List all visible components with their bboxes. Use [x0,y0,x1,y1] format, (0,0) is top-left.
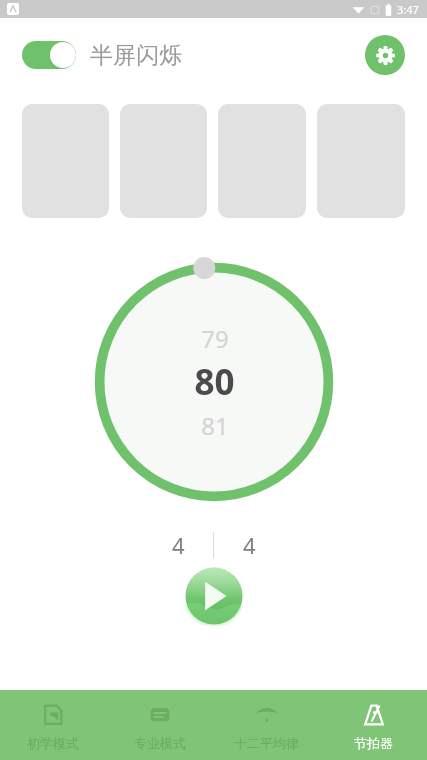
staticText: 80 [194,358,235,406]
staticText: 81 [201,409,229,442]
staticText: 4 [243,530,256,560]
staticText: 节拍器 [354,735,393,751]
button[interactable]: 初学模式 [0,690,106,760]
staticText: 十二平均律 [234,735,299,751]
staticText: 3:47 [397,2,419,17]
button[interactable]: Beats per measure [143,527,213,563]
button[interactable]: 节拍器 [320,690,427,760]
staticText: 79 [201,322,229,355]
staticText: 专业模式 [134,735,186,751]
button[interactable]: Settings [365,35,405,75]
staticText: 半屏闪烁 [90,41,182,70]
button[interactable]: Note value [214,527,284,563]
staticText: 4 [172,530,185,560]
button[interactable]: Play metronome [183,565,245,627]
staticText: 初学模式 [27,735,79,751]
button[interactable]: 十二平均律 [213,690,320,760]
button[interactable]: Half screen flash toggle [22,41,76,69]
button[interactable]: 专业模式 [106,690,213,760]
